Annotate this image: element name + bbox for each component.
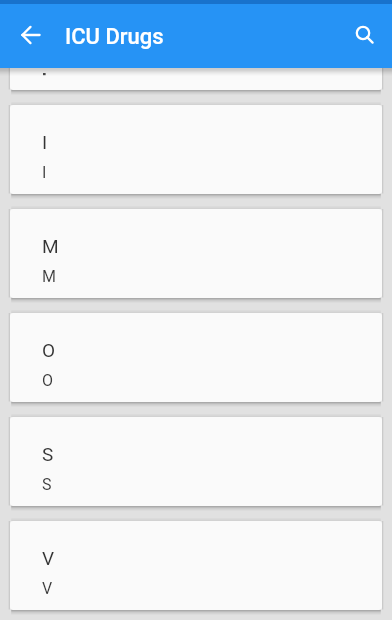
staticText: O: [42, 371, 54, 390]
button[interactable]: Navigate back: [4, 8, 58, 62]
button[interactable]: [10, 1, 382, 90]
staticText: I: [42, 131, 48, 153]
button[interactable]: I: [10, 105, 382, 194]
button[interactable]: M: [10, 209, 382, 298]
button[interactable]: O: [10, 313, 382, 402]
button[interactable]: V: [10, 521, 382, 610]
button[interactable]: Search: [337, 8, 391, 62]
staticText: M: [42, 235, 59, 257]
button[interactable]: S: [10, 417, 382, 506]
staticText: V: [42, 547, 55, 569]
staticText: S: [42, 475, 52, 494]
staticText: O: [42, 339, 56, 361]
staticText: ICU Drugs: [65, 24, 164, 50]
staticText: S: [42, 443, 54, 465]
staticText: I: [42, 163, 47, 182]
staticText: M: [42, 267, 56, 286]
staticText: V: [42, 579, 53, 598]
